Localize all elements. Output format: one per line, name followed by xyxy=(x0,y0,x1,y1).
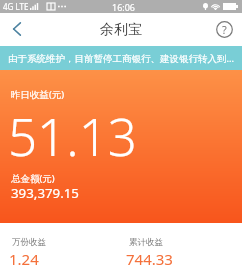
staticText: 万份收益 xyxy=(12,237,46,248)
staticText: 744.33 xyxy=(126,249,173,269)
staticText: 累计收益 xyxy=(129,237,163,248)
button[interactable]: 万份收益 xyxy=(0,223,117,269)
staticText: 51.13 xyxy=(8,101,137,170)
staticText: 393,379.15 xyxy=(11,184,79,202)
staticText: 余利宝 xyxy=(100,21,142,39)
button[interactable]: 累计收益 xyxy=(117,223,242,269)
staticText: 1.24 xyxy=(9,249,39,269)
staticText: 总金额(元) xyxy=(11,172,55,185)
staticText: ? xyxy=(222,22,227,37)
staticText: 16:06 xyxy=(112,1,136,13)
button[interactable]: Help xyxy=(208,13,242,46)
button[interactable]: 由于系统维护，目前暂停工商银行、建设银行转入到… xyxy=(0,46,242,70)
staticText: 由于系统维护，目前暂停工商银行、建设银行转入到… xyxy=(8,52,235,65)
staticText: 昨日收益(元) xyxy=(11,88,65,101)
staticText: 4G LTE xyxy=(3,1,29,12)
button[interactable]: Back xyxy=(0,13,34,46)
